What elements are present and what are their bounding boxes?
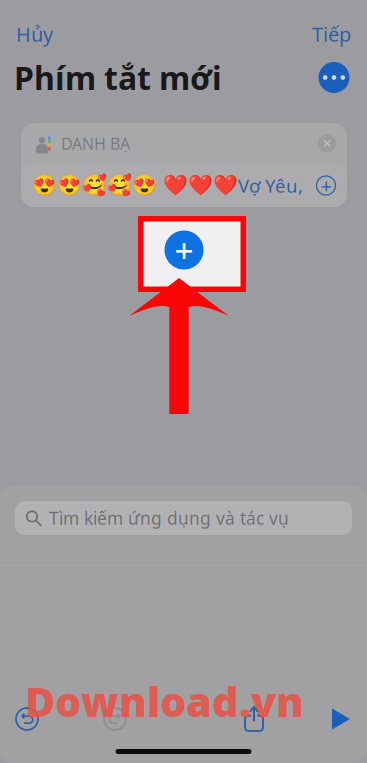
button[interactable]: Share xyxy=(232,701,276,737)
staticText: ✕ xyxy=(322,137,332,150)
button[interactable]: Undo xyxy=(5,701,49,737)
button[interactable]: Hủy xyxy=(13,17,56,51)
staticText: ❤️❤️❤️ xyxy=(163,174,238,197)
button[interactable]: Add action xyxy=(161,227,207,273)
staticText: 😍😍🥰🥰😍 xyxy=(32,174,157,197)
staticText: Tìm kiếm ứng dụng và tác vụ xyxy=(49,506,289,529)
staticText: + xyxy=(174,228,193,272)
staticText: Phím tắt mới xyxy=(14,56,222,99)
staticText: Download.vn xyxy=(25,674,304,728)
button[interactable]: More options xyxy=(314,57,354,97)
staticText: Tiếp xyxy=(312,21,351,47)
button[interactable]: Redo xyxy=(93,701,137,737)
button[interactable]: Add recipient xyxy=(315,174,337,196)
button[interactable]: Tiếp xyxy=(309,17,354,51)
staticText: Vợ Yêu, xyxy=(238,173,303,198)
staticText: DANH BẠ xyxy=(61,133,130,154)
staticText: + xyxy=(320,172,331,199)
button[interactable]: Remove action xyxy=(316,132,338,154)
staticText: Hủy xyxy=(16,21,53,47)
button[interactable]: Run shortcut xyxy=(319,701,363,737)
